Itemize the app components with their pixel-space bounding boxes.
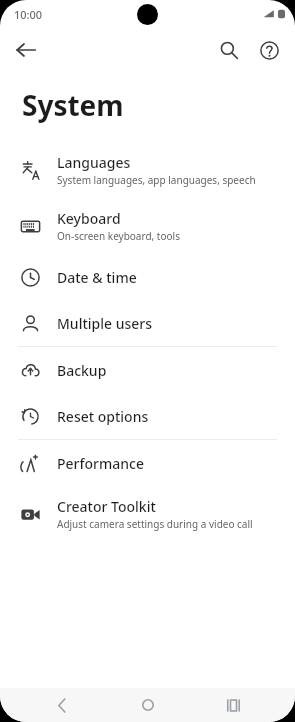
button[interactable]: Languages	[0, 142, 295, 198]
button[interactable]: Reset options	[0, 393, 295, 439]
staticText: System	[22, 86, 124, 124]
staticText: Keyboard	[57, 209, 121, 228]
button[interactable]: Back	[6, 30, 46, 70]
staticText: Adjust camera settings during a video ca…	[57, 517, 253, 531]
staticText: Date & time	[57, 268, 137, 287]
button[interactable]: Recents	[210, 688, 256, 722]
staticText: 10:00	[14, 7, 43, 22]
staticText: Creator Toolkit	[57, 497, 156, 516]
button[interactable]: Help	[249, 30, 289, 70]
staticText: Backup	[57, 361, 107, 380]
staticText: Reset options	[57, 407, 149, 426]
button[interactable]: Search	[209, 30, 249, 70]
staticText: Languages	[57, 153, 131, 172]
staticText: System languages, app languages, speech	[57, 173, 256, 187]
button[interactable]: Performance	[0, 440, 295, 486]
staticText: On-screen keyboard, tools	[57, 229, 180, 243]
button[interactable]: Backup	[0, 347, 295, 393]
staticText: Performance	[57, 454, 144, 473]
staticText: Multiple users	[57, 314, 153, 333]
button[interactable]: Back	[39, 688, 85, 722]
button[interactable]: Multiple users	[0, 300, 295, 346]
button[interactable]: Home	[125, 688, 171, 722]
button[interactable]: Date & time	[0, 254, 295, 300]
button[interactable]: Keyboard	[0, 198, 295, 254]
button[interactable]: Creator Toolkit	[0, 486, 295, 542]
